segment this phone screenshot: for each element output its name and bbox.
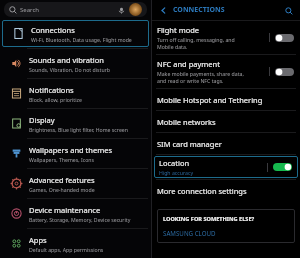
- button[interactable]: Sounds and vibration: [0, 49, 151, 78]
- staticText: Games, One-handed mode: [29, 186, 95, 193]
- button[interactable]: Advanced features: [0, 169, 151, 198]
- staticText: SIM card manager: [157, 139, 222, 149]
- staticText: Location: [159, 158, 190, 168]
- staticText: Mobile networks: [157, 117, 216, 127]
- button[interactable]: Display: [0, 109, 151, 138]
- staticText: Wi-Fi, Bluetooth, Data usage, Flight mod…: [31, 36, 132, 43]
- staticText: Sounds, Vibration, Do not disturb: [29, 66, 110, 73]
- button[interactable]: Location: [154, 156, 298, 178]
- staticText: Search: [20, 6, 39, 14]
- staticText: SAMSUNG CLOUD: [163, 229, 216, 237]
- staticText: CONNECTIONS: [173, 5, 225, 15]
- staticText: Make mobile payments, share data, and re…: [157, 70, 244, 84]
- staticText: Display: [29, 115, 55, 125]
- staticText: Battery, Storage, Memory, Device securit…: [29, 216, 131, 223]
- staticText: Device maintenance: [29, 205, 101, 215]
- staticText: Brightness, Blue light filter, Home scre…: [29, 126, 128, 133]
- staticText: LOOKING FOR SOMETHING ELSE?: [163, 215, 255, 223]
- button[interactable]: NFC and payment: [152, 55, 300, 88]
- staticText: Wallpapers, Themes, Icons: [29, 156, 94, 163]
- button[interactable]: Apps: [0, 229, 151, 258]
- button[interactable]: Flight mode: [152, 21, 300, 54]
- button[interactable]: Location toggle: [273, 162, 292, 172]
- staticText: High accuracy: [159, 169, 194, 176]
- button[interactable]: Mobile Hotspot and Tethering: [152, 89, 300, 110]
- staticText: Wallpapers and themes: [29, 145, 113, 155]
- button[interactable]: More connection settings: [152, 180, 300, 201]
- staticText: Advanced features: [29, 175, 95, 185]
- button[interactable]: Voice search: [116, 5, 126, 15]
- staticText: Default apps, App permissions: [29, 246, 104, 253]
- staticText: Connections: [31, 25, 75, 35]
- button[interactable]: Search: [282, 4, 295, 17]
- button[interactable]: Search: [4, 2, 147, 17]
- staticText: Block, allow, prioritize: [29, 96, 82, 103]
- staticText: Flight mode: [157, 25, 200, 35]
- button[interactable]: Flight mode toggle: [275, 33, 294, 43]
- staticText: Notifications: [29, 85, 74, 95]
- button[interactable]: SIM card manager: [152, 133, 300, 154]
- staticText: Turn off calling, messaging, and Mobile …: [157, 36, 235, 50]
- button[interactable]: Connections: [2, 20, 149, 47]
- button[interactable]: Device maintenance: [0, 199, 151, 228]
- button[interactable]: Mobile networks: [152, 111, 300, 132]
- button[interactable]: Wallpapers and themes: [0, 139, 151, 168]
- button[interactable]: Back: [157, 4, 169, 16]
- button[interactable]: NFC and payment toggle: [275, 67, 294, 77]
- staticText: Apps: [29, 235, 47, 245]
- button[interactable]: Notifications: [0, 79, 151, 108]
- button[interactable]: Account: [129, 3, 142, 16]
- button[interactable]: LOOKING FOR SOMETHING ELSE?: [157, 209, 295, 243]
- staticText: NFC and payment: [157, 59, 220, 69]
- staticText: Sounds and vibration: [29, 55, 104, 65]
- staticText: More connection settings: [157, 186, 247, 196]
- staticText: Mobile Hotspot and Tethering: [157, 95, 263, 105]
